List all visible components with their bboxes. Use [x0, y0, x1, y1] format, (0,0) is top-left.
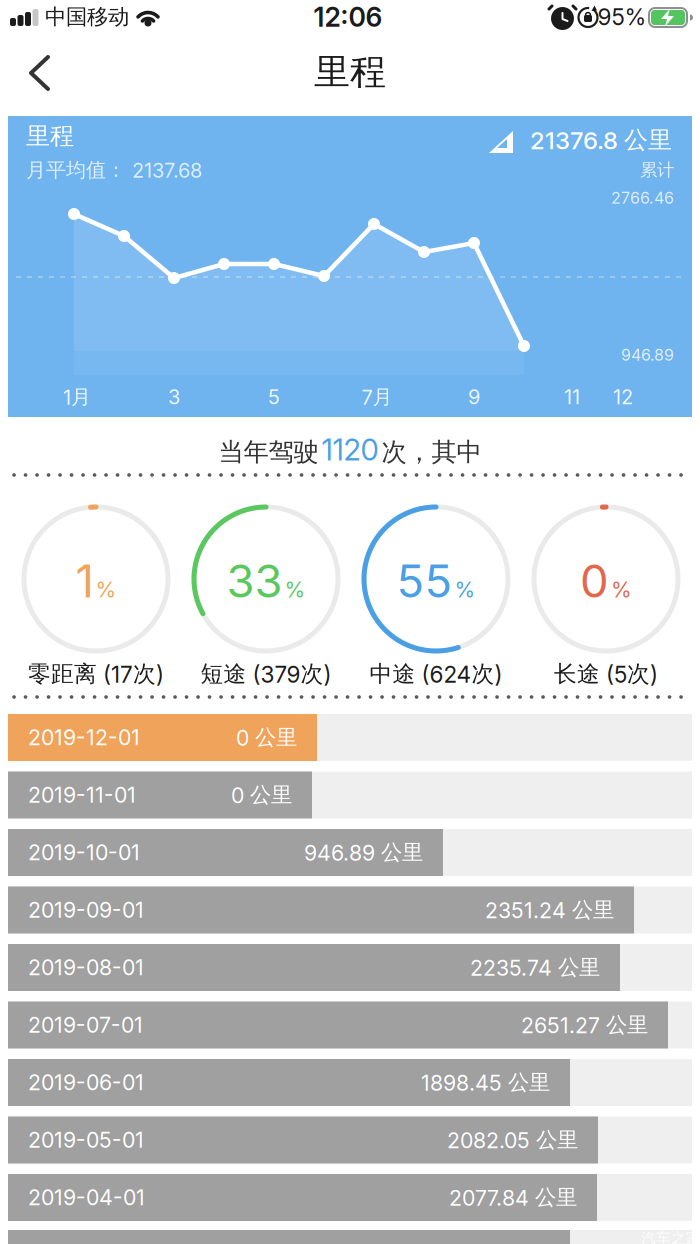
staticText: 12: [613, 385, 633, 409]
staticText: 2651.27 公里: [521, 1012, 648, 1038]
staticText: 中途 (624次): [369, 660, 502, 688]
staticText: 2019-07-01: [28, 1012, 143, 1038]
button[interactable]: 2019-05-01: [8, 1116, 692, 1163]
staticText: 11: [564, 385, 580, 409]
staticText: 3: [168, 385, 180, 409]
button[interactable]: 2019-07-01: [8, 1001, 692, 1048]
staticText: 0 公里: [231, 782, 292, 808]
staticText: 月平均值： 2137.68: [26, 158, 202, 182]
staticText: 2019-04-01: [28, 1185, 145, 1210]
staticText: 中国移动: [45, 4, 129, 30]
staticText: 2019-06-01: [28, 1070, 144, 1095]
button[interactable]: 2019-10-01: [8, 829, 692, 876]
staticText: 零距离 (17次): [28, 660, 164, 688]
staticText: 汽车之家: [641, 1229, 700, 1244]
staticText: 95%: [597, 4, 646, 30]
staticText: 当年驾驶: [218, 436, 318, 467]
staticText: 2019-09-01: [28, 897, 144, 923]
staticText: 1120: [321, 432, 378, 467]
staticText: 累计: [640, 159, 674, 181]
staticText: 2019-10-01: [28, 840, 140, 865]
staticText: %: [95, 577, 116, 602]
staticText: 12:06: [313, 1, 382, 33]
staticText: 2077.84 公里: [449, 1184, 577, 1211]
staticText: 2351.24 公里: [485, 897, 614, 923]
staticText: 0 公里: [236, 724, 297, 751]
button[interactable]: Back: [0, 0, 70, 105]
staticText: 946.89 公里: [304, 839, 423, 866]
button[interactable]: 2019-09-01: [8, 886, 692, 933]
staticText: 1月: [63, 385, 91, 409]
staticText: 9: [468, 385, 480, 409]
staticText: 里程: [314, 50, 386, 94]
staticText: 1898.45 公里: [421, 1069, 550, 1096]
staticText: 946.89: [621, 346, 674, 364]
staticText: 55: [396, 554, 452, 608]
staticText: 1: [75, 554, 93, 608]
staticText: 2019-11-01: [28, 782, 136, 808]
button[interactable]: 2019-11-01: [8, 771, 692, 818]
button[interactable]: 2019-06-01: [8, 1059, 692, 1106]
staticText: 2235.74 公里: [470, 954, 600, 981]
staticText: %: [454, 577, 475, 602]
staticText: 次，其中: [381, 436, 481, 467]
staticText: 里程: [26, 121, 74, 151]
button[interactable]: 2019-08-01: [8, 944, 692, 991]
staticText: %: [284, 577, 305, 602]
staticText: 33: [226, 554, 282, 608]
button[interactable]: 2019-12-01: [8, 714, 692, 761]
staticText: 长途 (5次): [554, 660, 658, 688]
staticText: 21376.8 公里: [530, 125, 672, 155]
staticText: 2019-08-01: [28, 955, 144, 980]
button[interactable]: 2019-04-01: [8, 1174, 692, 1221]
staticText: 2019-05-01: [28, 1127, 144, 1153]
staticText: %: [611, 577, 632, 602]
staticText: 2766.46: [611, 189, 674, 207]
staticText: 5: [268, 385, 280, 409]
staticText: 0: [580, 554, 609, 608]
staticText: 2019-12-01: [28, 725, 140, 750]
staticText: 2082.05 公里: [447, 1127, 578, 1153]
staticText: 短途 (379次): [200, 660, 331, 688]
staticText: 7月: [361, 385, 392, 409]
